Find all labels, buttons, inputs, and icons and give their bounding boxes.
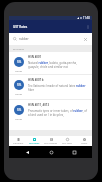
button[interactable]: About [76, 136, 92, 147]
staticText: 5% [17, 60, 22, 64]
button[interactable]: 5% [9, 100, 92, 130]
button[interactable]: GST Rates [26, 136, 42, 147]
button[interactable]: GST Updates [43, 136, 59, 147]
button[interactable]: Recents [70, 148, 78, 156]
staticText: 5% [17, 83, 22, 87]
button[interactable]: Calculator [10, 136, 26, 147]
staticText: GST Updates [44, 142, 58, 145]
staticText: Pneumatic tyres or inner tubes, of rubbe… [28, 109, 88, 117]
staticText: Calculator [13, 142, 24, 145]
button[interactable]: 5% [9, 75, 92, 99]
button[interactable]: Clear search [82, 36, 88, 42]
staticText: rubber [19, 37, 29, 41]
button[interactable]: Home [47, 148, 55, 156]
button[interactable]: 5% [9, 52, 92, 74]
staticText: GST Rates [29, 142, 40, 145]
staticText: GST Rates [13, 25, 28, 29]
staticText: Goods [15, 69, 23, 72]
button[interactable]: GST Tools [59, 136, 75, 147]
staticText: GST Tools [62, 142, 72, 145]
staticText: About [81, 142, 88, 145]
staticText: 85 results [13, 47, 24, 50]
staticText: HSN 4001 [28, 55, 42, 59]
staticText: Goods [15, 92, 23, 95]
staticText: HSN 4007 b [28, 78, 44, 82]
button[interactable]: Back [23, 148, 31, 156]
staticText: HSN 4011, 4013 [28, 103, 50, 107]
staticText: Natural rubber, balata, gutta-percha, gu… [28, 61, 88, 69]
staticText: 11:50 [83, 16, 90, 20]
staticText: Tex (latisomic) made of natural latex ru… [28, 84, 88, 92]
staticText: 5% [17, 108, 22, 112]
button[interactable]: More options [84, 22, 92, 32]
staticText: Goods [15, 117, 23, 120]
